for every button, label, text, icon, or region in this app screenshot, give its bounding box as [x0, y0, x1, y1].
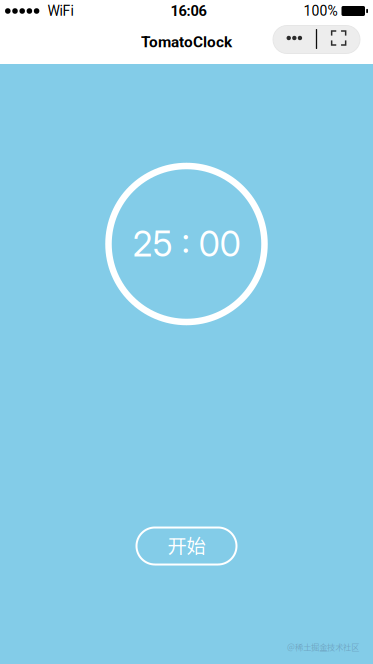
staticText: 100% — [303, 3, 337, 19]
staticText: @稀土掘金技术社区 — [287, 641, 359, 653]
staticText: 25 : 00 — [132, 223, 240, 265]
staticText: WiFi — [47, 3, 73, 19]
button[interactable]: Close mini program — [317, 25, 360, 53]
staticText: 16:06 — [170, 2, 206, 20]
staticText: TomatoClock — [141, 33, 232, 51]
button[interactable]: 25 : 00 — [108, 166, 264, 322]
staticText: 开始 — [167, 530, 205, 558]
button[interactable]: More — [273, 25, 316, 53]
button[interactable]: 开始 — [136, 527, 236, 564]
